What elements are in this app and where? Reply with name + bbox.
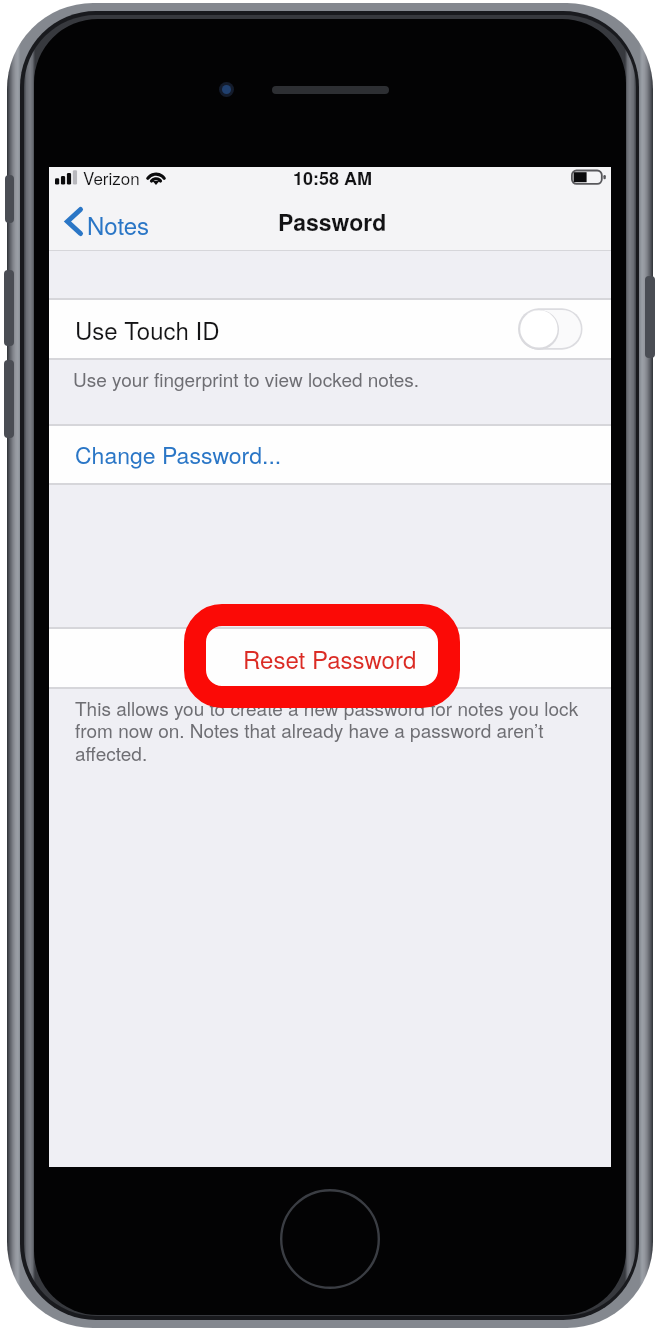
- staticText: Change Password...: [75, 438, 282, 471]
- staticText: 10:58 AM: [293, 165, 373, 191]
- staticText: Use your fingerprint to view locked note…: [73, 365, 420, 392]
- staticText: Verizon: [83, 165, 140, 189]
- button[interactable]: Change Password...: [49, 425, 611, 483]
- button[interactable]: Reset Password: [49, 628, 611, 687]
- staticText: Notes: [87, 207, 150, 241]
- staticText: Password: [278, 205, 387, 238]
- button[interactable]: Back to Notes: [59, 201, 164, 251]
- button[interactable]: Use Touch ID: [49, 300, 611, 358]
- staticText: Reset Password: [243, 641, 417, 675]
- staticText: This allows you to create a new password…: [75, 694, 587, 767]
- staticText: Use Touch ID: [75, 312, 220, 346]
- button[interactable]: Use Touch ID toggle: [518, 308, 583, 350]
